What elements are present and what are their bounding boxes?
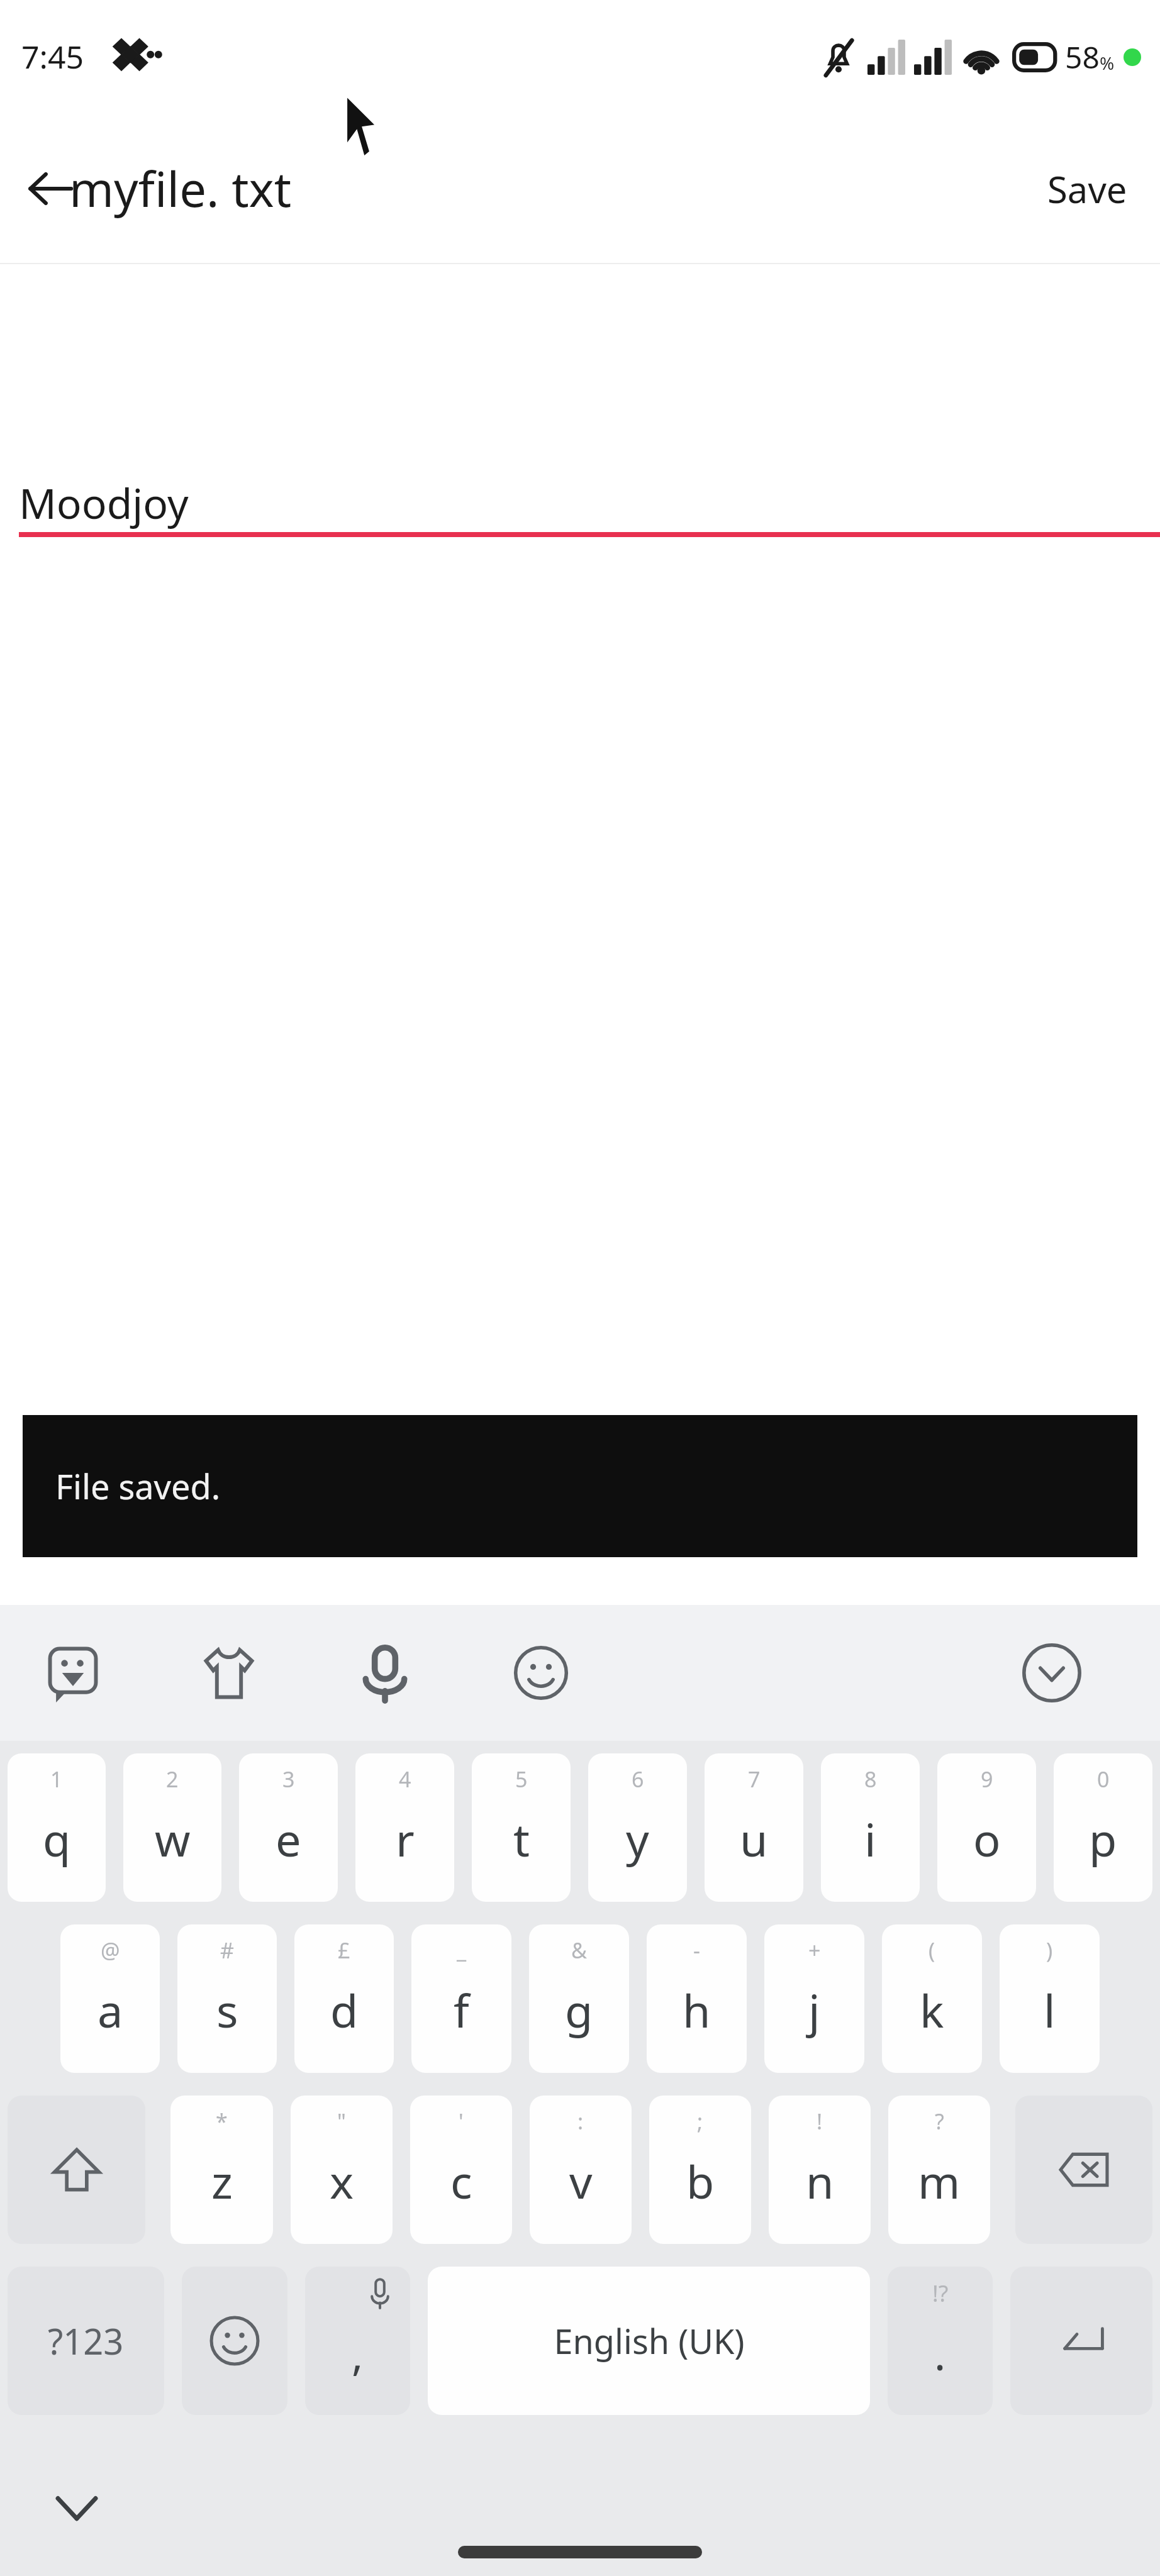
button[interactable]: 1 <box>8 1753 106 1902</box>
button[interactable]: Save <box>1030 152 1145 226</box>
staticText: y <box>626 1808 649 1870</box>
button[interactable]: 0 <box>1054 1753 1152 1902</box>
staticText: z <box>211 2150 233 2212</box>
button[interactable]: & <box>529 1924 629 2073</box>
button[interactable]: Emoji <box>481 1613 601 1733</box>
staticText: i <box>864 1808 876 1870</box>
button[interactable]: : <box>530 2096 632 2244</box>
staticText: % <box>1100 51 1115 75</box>
staticText: 7 <box>748 1765 761 1794</box>
staticText: ( <box>929 1936 935 1965</box>
staticText: " <box>337 2107 346 2136</box>
staticText: w <box>155 1808 191 1870</box>
staticText: 6 <box>632 1765 644 1794</box>
staticText: 4 <box>399 1765 411 1794</box>
button[interactable]: ; <box>649 2096 751 2244</box>
staticText: English (UK) <box>554 2318 745 2364</box>
button[interactable]: 6 <box>588 1753 687 1902</box>
staticText: * <box>216 2107 228 2136</box>
staticText: Moodjoy <box>19 474 189 531</box>
staticText: u <box>740 1808 768 1870</box>
button[interactable]: English (UK) <box>428 2267 870 2415</box>
staticText: e <box>276 1808 301 1870</box>
button[interactable]: " <box>291 2096 393 2244</box>
staticText: 7:45 <box>21 35 84 78</box>
button[interactable]: Emoji keyboard <box>182 2267 287 2415</box>
button[interactable]: Shift <box>8 2096 145 2244</box>
staticText: ? <box>935 2107 944 2136</box>
button[interactable]: ! <box>769 2096 871 2244</box>
staticText: £ <box>338 1936 350 1965</box>
button[interactable]: # <box>177 1924 277 2073</box>
staticText: File saved. <box>55 1463 221 1509</box>
staticText: d <box>330 1979 359 2041</box>
button[interactable]: , <box>305 2267 410 2415</box>
button[interactable]: - <box>647 1924 747 2073</box>
staticText: ! <box>817 2107 823 2136</box>
staticText: myfile. txt <box>69 156 292 221</box>
staticText: !? <box>932 2278 949 2309</box>
button[interactable]: !? <box>888 2267 993 2415</box>
staticText: f <box>454 1979 469 2041</box>
staticText: p <box>1089 1808 1117 1870</box>
button[interactable]: 7 <box>705 1753 803 1902</box>
staticText: c <box>450 2150 472 2212</box>
staticText: 8 <box>864 1765 877 1794</box>
button[interactable]: @ <box>60 1924 160 2073</box>
staticText: @ <box>101 1936 120 1965</box>
staticText: ) <box>1046 1936 1053 1965</box>
staticText: h <box>683 1979 711 2041</box>
staticText: # <box>220 1936 234 1965</box>
button[interactable]: ? <box>888 2096 990 2244</box>
staticText: j <box>808 1979 820 2041</box>
staticText: ; <box>697 2107 703 2136</box>
staticText: - <box>693 1936 700 1965</box>
staticText: q <box>43 1808 71 1870</box>
staticText: b <box>686 2150 715 2212</box>
button[interactable]: 4 <box>355 1753 454 1902</box>
staticText: + <box>808 1936 821 1965</box>
staticText: k <box>920 1979 944 2041</box>
button[interactable]: ?123 <box>8 2267 164 2415</box>
staticText: x <box>330 2150 354 2212</box>
button[interactable]: Stickers <box>13 1613 133 1733</box>
button[interactable]: File saved. <box>23 1415 1137 1557</box>
staticText: g <box>565 1979 593 2041</box>
button[interactable]: 8 <box>821 1753 920 1902</box>
button[interactable]: _ <box>411 1924 511 2073</box>
button[interactable]: 5 <box>472 1753 571 1902</box>
button[interactable]: ) <box>1000 1924 1100 2073</box>
staticText: ?123 <box>48 2317 124 2365</box>
staticText: 3 <box>282 1765 295 1794</box>
staticText: 58 <box>1065 36 1100 77</box>
staticText: Save <box>1047 164 1127 214</box>
button[interactable]: Collapse toolbar <box>991 1613 1112 1733</box>
button[interactable]: £ <box>294 1924 394 2073</box>
button[interactable]: Backspace <box>1015 2096 1152 2244</box>
staticText: 5 <box>515 1765 528 1794</box>
button[interactable]: Moodjoy <box>19 304 1160 537</box>
staticText: o <box>973 1808 1001 1870</box>
button[interactable]: + <box>764 1924 864 2073</box>
staticText: t <box>513 1808 530 1870</box>
button[interactable]: Voice input <box>325 1613 445 1733</box>
staticText: & <box>571 1936 587 1965</box>
button[interactable]: 9 <box>937 1753 1036 1902</box>
staticText: _ <box>457 1936 467 1965</box>
button[interactable]: Themes <box>169 1613 289 1733</box>
button[interactable]: ' <box>410 2096 512 2244</box>
button[interactable]: Enter <box>1010 2267 1152 2415</box>
button[interactable]: Back <box>10 148 91 229</box>
staticText: a <box>98 1979 123 2041</box>
button[interactable]: 3 <box>239 1753 338 1902</box>
button[interactable]: 2 <box>123 1753 221 1902</box>
staticText: l <box>1044 1979 1056 2041</box>
button[interactable]: Hide keyboard <box>35 2467 118 2550</box>
staticText: n <box>806 2150 834 2212</box>
button[interactable]: * <box>170 2096 273 2244</box>
staticText: 1 <box>50 1765 63 1794</box>
staticText: v <box>569 2150 593 2212</box>
button[interactable]: ( <box>882 1924 982 2073</box>
staticText: r <box>396 1808 415 1870</box>
staticText: m <box>918 2150 961 2212</box>
